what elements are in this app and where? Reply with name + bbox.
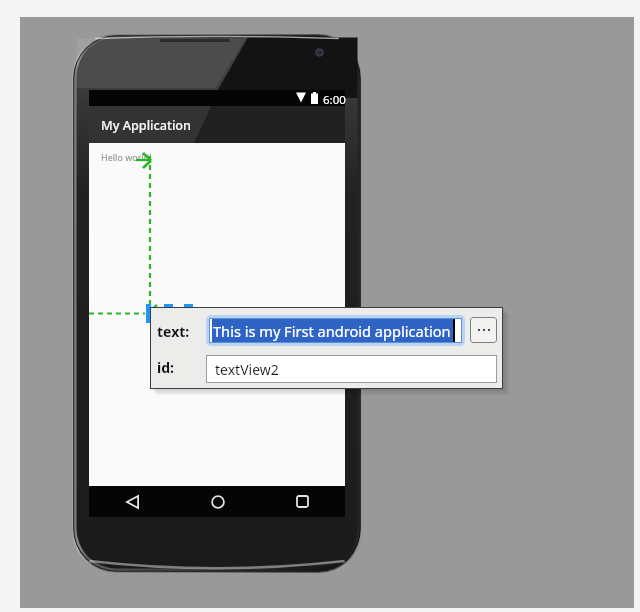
staticText: textView2 [215, 360, 279, 379]
staticText: This is my First android application [213, 321, 451, 341]
button[interactable]: Recents [260, 486, 345, 517]
staticText: Hello world! [101, 151, 152, 163]
staticText: 6:00 [323, 92, 346, 108]
button[interactable]: Home [175, 486, 260, 517]
staticText: My Application [101, 116, 192, 133]
staticText: id: [157, 358, 174, 377]
button[interactable]: More, edit text resource [470, 317, 497, 343]
staticText: text: [157, 322, 190, 341]
button[interactable]: Back [89, 486, 175, 517]
